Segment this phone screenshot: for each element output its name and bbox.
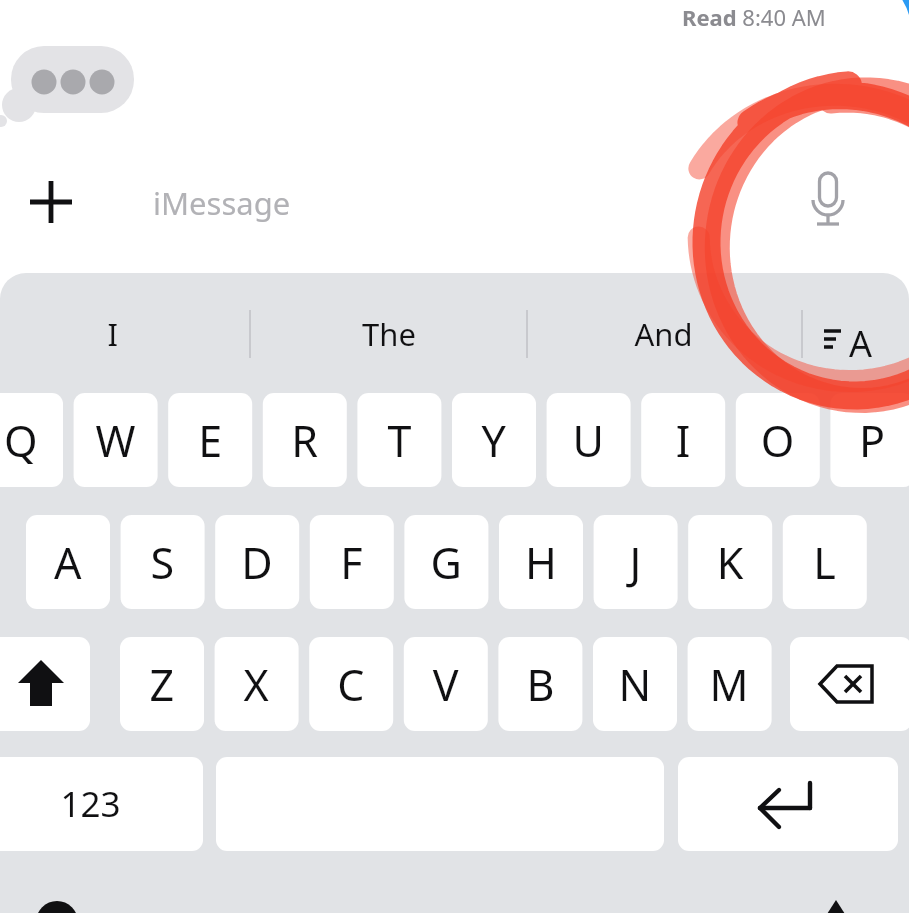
button[interactable]: G <box>404 515 488 609</box>
button[interactable]: I <box>641 393 725 487</box>
button[interactable]: S <box>121 515 205 609</box>
button[interactable]: Z <box>120 637 204 731</box>
button[interactable]: O <box>736 393 820 487</box>
button[interactable]: Y <box>452 393 536 487</box>
button[interactable]: Numbers <box>0 757 203 851</box>
button[interactable]: Backspace <box>790 637 909 731</box>
button[interactable]: E <box>168 393 252 487</box>
button[interactable]: Text formatting <box>804 302 909 364</box>
button[interactable]: H <box>499 515 583 609</box>
button[interactable]: K <box>688 515 772 609</box>
button[interactable]: V <box>404 637 488 731</box>
button[interactable]: The <box>252 302 525 364</box>
button[interactable]: F <box>310 515 394 609</box>
button[interactable]: W <box>74 393 158 487</box>
button[interactable]: R <box>263 393 347 487</box>
button[interactable]: C <box>309 637 393 731</box>
button[interactable]: I <box>0 302 250 364</box>
button[interactable]: T <box>357 393 441 487</box>
button[interactable]: B <box>498 637 582 731</box>
button[interactable]: Dictate <box>795 166 865 241</box>
button[interactable]: D <box>215 515 299 609</box>
button[interactable]: L <box>783 515 867 609</box>
button[interactable]: And <box>529 302 801 364</box>
button[interactable]: X <box>215 637 299 731</box>
button[interactable]: P <box>830 393 909 487</box>
button[interactable]: J <box>594 515 678 609</box>
button[interactable]: M <box>688 637 772 731</box>
button[interactable]: U <box>547 393 631 487</box>
button[interactable]: A <box>26 515 110 609</box>
button[interactable]: Message input field <box>123 166 823 241</box>
button[interactable]: Add attachment <box>10 161 92 243</box>
button[interactable]: Q <box>0 393 63 487</box>
button[interactable]: Shift <box>0 637 90 731</box>
button[interactable]: Return <box>678 757 898 851</box>
button[interactable]: N <box>593 637 677 731</box>
